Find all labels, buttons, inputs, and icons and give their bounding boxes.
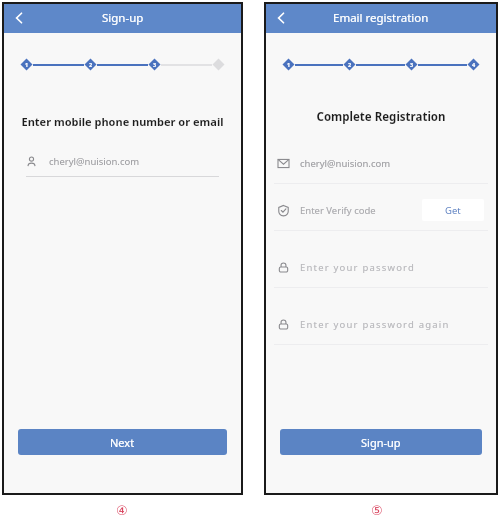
staticText: Enter mobile phone number or email [2,114,243,129]
staticText: 3 [153,61,157,68]
staticText: 4 [472,61,476,68]
staticText: 2 [89,61,93,68]
staticText: Enter your password [300,261,484,274]
staticText: Sign-up [102,10,144,26]
staticText: 1 [25,61,29,68]
button[interactable]: Enter Verify code [264,190,498,231]
staticText: Get [445,204,461,217]
staticText: Complete Registration [264,109,498,125]
staticText: 3 [410,61,414,68]
button[interactable]: Get [422,199,484,221]
staticText: 2 [348,61,352,68]
button[interactable]: Sign-up [280,429,482,455]
button[interactable]: Next [18,429,227,455]
staticText: ⑤ [371,503,383,518]
button[interactable]: cheryl@nuision.com [264,143,498,184]
staticText: Enter Verify code [300,204,422,217]
staticText: cheryl@nuision.com [49,155,140,168]
staticText: 1 [287,61,291,68]
staticText: cheryl@nuision.com [300,157,484,170]
button[interactable]: Enter your password again [264,304,498,345]
staticText: Next [110,435,135,450]
staticText: Email registration [333,10,429,26]
staticText: ④ [116,503,128,518]
staticText: Enter your password again [300,318,484,331]
button[interactable]: Back [2,2,36,33]
staticText: Sign-up [361,435,401,450]
button[interactable]: Back [264,2,298,33]
button[interactable]: Enter your password [264,247,498,288]
